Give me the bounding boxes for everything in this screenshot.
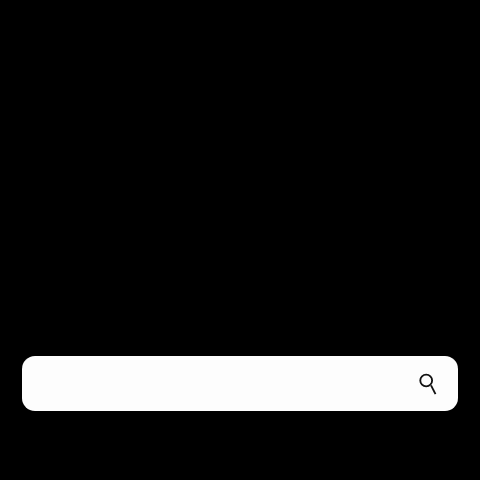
button[interactable]: Search field [22,356,458,411]
button[interactable]: Search [408,365,446,403]
